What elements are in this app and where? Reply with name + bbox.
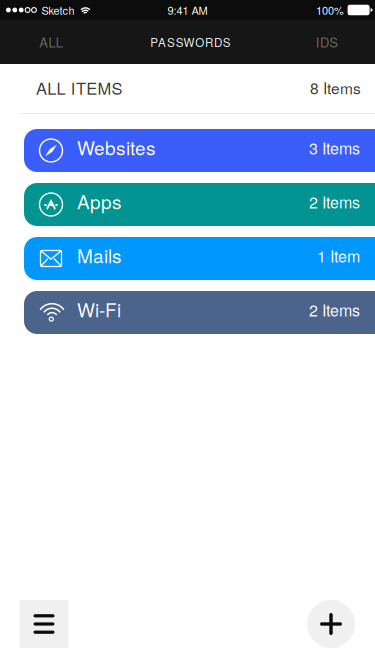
staticText: PASSWORDS xyxy=(150,34,231,50)
staticText: 3 Items xyxy=(309,136,360,159)
staticText: 100% xyxy=(316,2,344,18)
staticText: 2 Items xyxy=(309,298,360,321)
staticText: Websites xyxy=(77,133,156,161)
button[interactable]: Add item xyxy=(307,600,355,648)
button[interactable]: Wi-Fi xyxy=(24,291,375,334)
button[interactable]: Mails xyxy=(24,237,375,280)
staticText: 2 Items xyxy=(309,190,360,213)
staticText: ALL xyxy=(39,33,63,51)
button[interactable]: ALL xyxy=(0,20,102,64)
staticText: IDS xyxy=(316,33,338,51)
staticText: 8 Items xyxy=(310,76,361,99)
button[interactable]: Websites xyxy=(24,129,375,172)
staticText: ALL ITEMS xyxy=(36,76,123,99)
button[interactable]: Apps xyxy=(24,183,375,226)
staticText: Wi-Fi xyxy=(77,295,121,323)
staticText: 1 Item xyxy=(317,244,360,267)
staticText: 9:41 AM xyxy=(167,2,207,18)
button[interactable]: IDS xyxy=(279,20,375,64)
staticText: Sketch xyxy=(41,2,74,18)
staticText: Apps xyxy=(77,187,122,215)
staticText: Mails xyxy=(77,241,122,269)
button[interactable]: Menu xyxy=(20,600,68,648)
